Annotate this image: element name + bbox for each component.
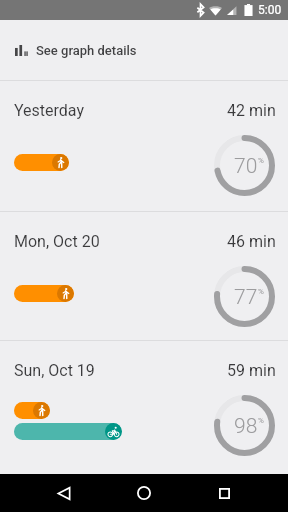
staticText: % (258, 416, 264, 425)
staticText: Mon, Oct 20 (14, 232, 100, 251)
staticText: Yesterday (14, 101, 85, 120)
staticText: 5:00 (258, 3, 282, 17)
staticText: See graph details (36, 43, 137, 58)
button[interactable]: Walking activity (14, 285, 74, 302)
button[interactable]: Mon, Oct 20 (0, 211, 288, 341)
button[interactable]: Biking activity (14, 423, 122, 440)
staticText: 46 min (227, 232, 276, 251)
staticText: Sun, Oct 19 (14, 361, 95, 380)
button[interactable]: See graph details (0, 20, 288, 80)
staticText: % (258, 156, 264, 165)
button[interactable]: Back (44, 474, 84, 512)
staticText: 77 (234, 285, 258, 310)
button[interactable]: Sun, Oct 19 (0, 340, 288, 470)
staticText: 70 (234, 154, 258, 179)
staticText: % (258, 287, 264, 296)
button[interactable]: Home (124, 474, 164, 512)
staticText: 42 min (227, 101, 276, 120)
button[interactable]: Recent apps (204, 474, 244, 512)
button[interactable]: Yesterday (0, 80, 288, 210)
button[interactable]: Walking activity (14, 154, 69, 171)
staticText: 59 min (227, 361, 276, 380)
staticText: 98 (234, 414, 258, 439)
button[interactable]: Walking activity (14, 402, 50, 419)
